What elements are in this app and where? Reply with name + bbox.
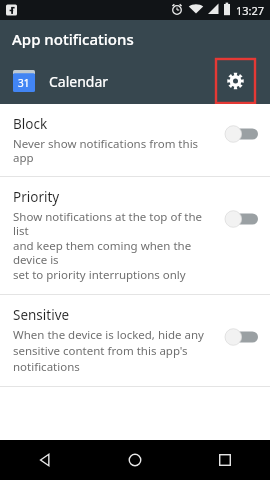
button[interactable]: Sensitive — [0, 295, 270, 386]
staticText: App notifications — [12, 29, 134, 49]
staticText: Calendar — [49, 72, 109, 91]
staticText: set to priority interruptions only — [13, 267, 186, 283]
staticText: 13:27 — [236, 3, 265, 18]
button[interactable]: Home — [90, 440, 180, 480]
staticText: Sensitive — [13, 306, 70, 324]
button[interactable]: Settings — [216, 59, 255, 103]
button[interactable]: Priority toggle — [224, 210, 258, 228]
button[interactable]: 31 — [0, 58, 270, 104]
button[interactable]: Sensitive toggle — [224, 328, 258, 346]
staticText: Never show notifications from this app — [13, 136, 216, 165]
staticText: When the device is locked, hide any — [13, 327, 204, 343]
button[interactable]: Back — [0, 440, 90, 480]
staticText: Block — [13, 115, 48, 133]
staticText: Show notifications at the top of the lis… — [13, 209, 216, 238]
staticText: 31 — [18, 76, 30, 90]
button[interactable]: Priority — [0, 177, 270, 294]
button[interactable]: Recents — [180, 440, 270, 480]
staticText: and keep them coming when the device is — [13, 238, 216, 267]
staticText: sensitive content from this app's — [13, 343, 188, 359]
button[interactable]: Block — [0, 104, 270, 176]
staticText: Priority — [13, 188, 60, 206]
staticText: notifications — [13, 359, 80, 375]
button[interactable]: Block toggle — [224, 125, 258, 143]
